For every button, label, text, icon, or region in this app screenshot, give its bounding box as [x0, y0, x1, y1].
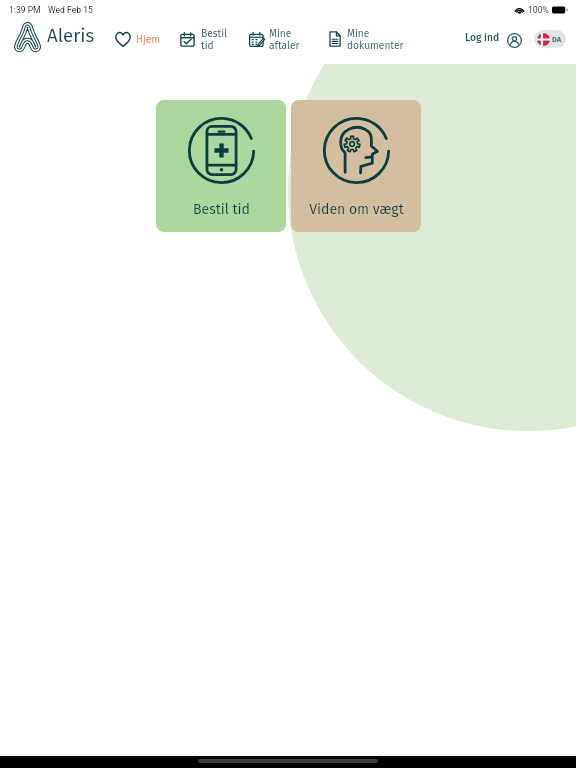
button[interactable]: Log ind — [461, 28, 504, 46]
staticText: Hjem — [136, 33, 161, 45]
staticText: Aleris — [47, 25, 95, 47]
button[interactable]: Bestil — [180, 22, 228, 56]
staticText: Bestil — [201, 27, 228, 39]
button[interactable]: Mine — [329, 22, 404, 56]
staticText: Wed Feb 15 — [48, 5, 93, 15]
button[interactable]: Aleris home — [14, 22, 95, 52]
button[interactable]: Mine — [249, 22, 300, 56]
staticText: Bestil tid — [193, 201, 250, 218]
staticText: tid — [201, 39, 214, 51]
staticText: DA — [552, 35, 562, 44]
button[interactable]: Hjem — [115, 22, 161, 56]
staticText: 1:39 PM — [9, 5, 41, 15]
staticText: Viden om vægt — [309, 201, 404, 218]
button[interactable]: Bestil tid — [156, 100, 286, 232]
button[interactable]: Viden om vægt — [291, 100, 421, 232]
staticText: dokumenter — [347, 39, 404, 51]
staticText: Mine — [269, 27, 292, 39]
button[interactable]: Language DA — [534, 30, 566, 48]
staticText: Mine — [347, 27, 370, 39]
button[interactable]: Account — [500, 26, 528, 54]
staticText: aftaler — [269, 39, 300, 51]
staticText: Log ind — [465, 31, 500, 43]
staticText: 100% — [528, 5, 549, 15]
